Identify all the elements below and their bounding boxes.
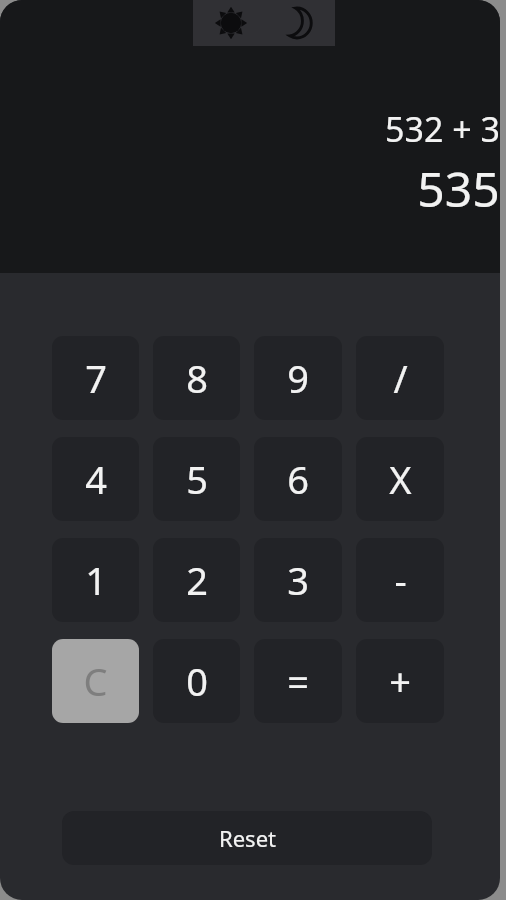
button[interactable]: 0: [153, 639, 240, 723]
staticText: X: [389, 453, 412, 505]
button[interactable]: 3: [254, 538, 342, 622]
button[interactable]: 5: [153, 437, 240, 521]
staticText: 1: [85, 554, 107, 606]
staticText: 8: [186, 352, 208, 404]
staticText: 0: [186, 655, 208, 707]
button[interactable]: 4: [52, 437, 139, 521]
staticText: =: [287, 655, 309, 707]
button[interactable]: X: [356, 437, 444, 521]
button[interactable]: 1: [52, 538, 139, 622]
staticText: 3: [287, 554, 309, 606]
staticText: 4: [85, 453, 107, 505]
staticText: /: [393, 352, 408, 404]
staticText: 5: [186, 453, 208, 505]
staticText: -: [394, 554, 407, 606]
staticText: 535: [417, 156, 500, 221]
staticText: 2: [186, 554, 208, 606]
button[interactable]: 9: [254, 336, 342, 420]
button[interactable]: /: [356, 336, 444, 420]
button[interactable]: +: [356, 639, 444, 723]
staticText: 7: [85, 352, 107, 404]
button[interactable]: Light theme: [202, 0, 260, 46]
staticText: +: [389, 655, 411, 707]
staticText: 9: [287, 352, 309, 404]
staticText: 532 + 3: [385, 106, 500, 152]
button[interactable]: Reset: [62, 811, 432, 865]
button[interactable]: =: [254, 639, 342, 723]
button[interactable]: C: [52, 639, 139, 723]
button[interactable]: -: [356, 538, 444, 622]
staticText: 6: [287, 453, 309, 505]
button[interactable]: 2: [153, 538, 240, 622]
staticText: C: [83, 655, 108, 707]
button[interactable]: 7: [52, 336, 139, 420]
button[interactable]: 6: [254, 437, 342, 521]
staticText: Reset: [219, 823, 276, 853]
button[interactable]: Dark theme: [268, 0, 326, 46]
button[interactable]: 8: [153, 336, 240, 420]
